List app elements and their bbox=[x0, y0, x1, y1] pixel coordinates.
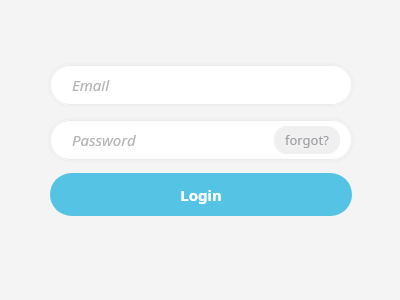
staticText: Password bbox=[72, 130, 136, 150]
staticText: Email bbox=[72, 75, 110, 95]
staticText: forgot? bbox=[285, 131, 329, 149]
button[interactable]: Login bbox=[50, 173, 352, 216]
button[interactable]: Password bbox=[50, 120, 352, 160]
staticText: Login bbox=[180, 185, 222, 205]
button[interactable]: forgot? bbox=[274, 126, 340, 154]
button[interactable]: Email bbox=[50, 65, 352, 105]
